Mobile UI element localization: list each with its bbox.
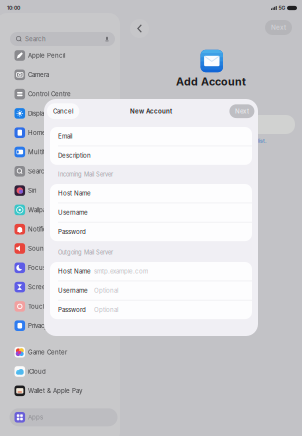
button[interactable]: Next [229,104,254,118]
button[interactable]: Focus [9,259,117,277]
staticText: Privacy & Security [28,322,79,329]
button[interactable]: Control Centre [9,85,117,103]
button[interactable]: Sounds [9,239,117,257]
staticText: Username [58,287,88,294]
staticText: Add Account [176,75,246,88]
staticText: Apps [28,414,43,421]
staticText: Camera [28,71,49,78]
button[interactable]: Home Screen & App Library [9,124,117,142]
staticText: Host Name [58,190,91,197]
staticText: Optional [94,287,118,294]
staticText: Host Name [58,268,91,275]
staticText: 10:00 [7,5,20,11]
staticText: Incoming Mail Server [58,171,113,178]
staticText: Wallpaper [28,206,56,214]
button[interactable]: iCloud [9,362,117,380]
staticText: Password [58,228,86,235]
staticText: New Account [130,107,172,115]
button[interactable]: Username [50,281,252,300]
staticText: Username [58,209,88,216]
button[interactable]: Host Name [50,262,252,281]
button[interactable]: Game Center [9,343,117,361]
button[interactable]: Username [50,203,252,222]
button[interactable]: Password [50,222,252,241]
staticText: Screen Time [28,283,66,291]
button[interactable]: Camera [9,66,117,84]
button[interactable]: Siri [9,182,117,200]
button[interactable]: Next [265,20,292,35]
button[interactable]: Wallet & Apple Pay [9,382,117,400]
button[interactable]: Touch ID & Passcode [9,297,117,315]
button[interactable]: Display & Brightness [9,104,117,122]
staticText: Next [235,107,249,115]
button[interactable]: Screen Time [9,278,117,296]
staticText: Cancel [53,107,73,115]
staticText: Wallet & Apple Pay [28,387,82,394]
button[interactable]: Email [50,127,252,146]
staticText: list. [258,137,267,144]
button[interactable]: Cancel [47,103,79,119]
button[interactable]: Search [9,162,117,180]
staticText: Touch ID & Passcode [28,303,92,310]
staticText: 5G [278,5,285,11]
staticText: Description [58,152,91,159]
button[interactable]: Host Name [50,184,252,203]
staticText: Siri [28,187,36,194]
staticText: Focus [28,264,46,271]
staticText: iCloud [28,368,46,375]
staticText: Email [58,133,72,140]
staticText: Home Screen & App Library [28,129,110,136]
staticText: Sounds [28,245,51,252]
button[interactable]: Apple Pencil [9,46,117,64]
button[interactable]: Notifications [9,220,117,238]
button[interactable]: Password [50,300,252,319]
button[interactable]: Wallpaper [9,201,117,219]
staticText: Optional [94,306,118,313]
staticText: smtp.example.com [94,268,148,275]
button[interactable]: Back [130,19,149,38]
staticText: Game Center [28,348,67,356]
staticText: Password [58,306,86,313]
staticText: Outgoing Mail Server [58,249,113,256]
staticText: Control Centre [28,90,71,98]
staticText: Search [28,168,49,175]
staticText: Notifications [28,225,64,233]
staticText: Apple Pencil [28,52,65,59]
button[interactable]: Description [50,146,252,165]
button[interactable]: Apps [9,408,117,426]
button[interactable]: Multitasking & Gestures [9,143,117,161]
staticText: Search [25,35,46,43]
staticText: Multitasking & Gestures [28,148,98,156]
button[interactable]: Privacy & Security [9,317,117,335]
staticText: Display & Brightness [28,110,86,117]
staticText: Next [271,24,286,31]
